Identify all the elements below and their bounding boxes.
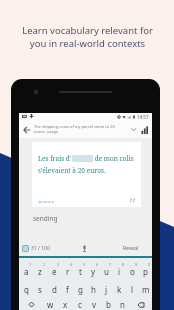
staticText: f <box>66 284 69 295</box>
staticText: b <box>106 299 111 310</box>
button[interactable]: 4 <box>61 261 74 280</box>
staticText: j <box>105 284 108 295</box>
staticText: s <box>38 284 42 295</box>
button[interactable]: g <box>74 280 87 299</box>
button[interactable]: j <box>100 280 113 299</box>
button[interactable]: n <box>115 299 129 310</box>
button[interactable]: f <box>61 280 74 299</box>
button[interactable]: 6 <box>87 261 100 280</box>
staticText: t <box>79 266 82 277</box>
button[interactable]: Shift <box>19 299 43 310</box>
button[interactable]: 7 <box>100 261 113 280</box>
staticText: 3 <box>57 262 60 267</box>
staticText: p <box>143 266 148 277</box>
button[interactable]: Reveal <box>120 243 142 254</box>
staticText: 5 <box>83 262 86 267</box>
button[interactable]: k <box>113 280 126 299</box>
button[interactable]: c <box>73 299 87 310</box>
staticText: k <box>117 284 122 295</box>
staticText: 7 <box>109 262 112 267</box>
button[interactable]: l <box>126 280 139 299</box>
button[interactable]: h <box>87 280 100 299</box>
staticText: 2 <box>43 262 46 267</box>
button[interactable]: w <box>43 299 58 310</box>
button[interactable]: x <box>58 299 73 310</box>
button[interactable]: Back <box>20 123 33 136</box>
button[interactable]: Backspace <box>129 299 152 310</box>
staticText: g <box>78 284 83 295</box>
staticText: o <box>130 266 135 277</box>
button[interactable]: 9 <box>126 261 139 280</box>
staticText: Learn vocabulary relevant for you in rea… <box>22 24 153 50</box>
staticText: 4 <box>70 262 73 267</box>
staticText: c <box>78 299 82 310</box>
button[interactable]: 3 <box>47 261 61 280</box>
button[interactable]: 8 <box>113 261 126 280</box>
staticText: s'élevaient à 20 euros. <box>38 166 106 175</box>
button[interactable]: d <box>47 280 61 299</box>
button[interactable]: Expand <box>129 125 138 134</box>
staticText: z <box>38 266 42 277</box>
staticText: euros. usage <box>34 129 59 134</box>
staticText: y <box>91 266 96 277</box>
staticText: 14:57 <box>137 114 149 120</box>
staticText: 6 <box>96 262 99 267</box>
staticText: n <box>120 299 125 310</box>
staticText: 1 <box>29 262 32 267</box>
staticText: 8 <box>122 262 125 267</box>
staticText: sens.a <box>42 199 54 204</box>
staticText: w <box>47 299 54 310</box>
staticText: Reveal <box>123 245 139 252</box>
button[interactable]: 2 <box>33 261 47 280</box>
staticText: x <box>63 299 68 310</box>
staticText: e <box>52 266 57 277</box>
staticText: u <box>104 266 109 277</box>
staticText: r <box>66 266 70 277</box>
staticText: i <box>118 266 121 277</box>
button[interactable]: Microphone <box>80 244 89 253</box>
staticText: 9 <box>135 262 138 267</box>
button[interactable]: m <box>139 280 152 299</box>
button[interactable]: 0 <box>139 261 152 280</box>
staticText: de mon colis <box>93 154 134 163</box>
button[interactable]: s <box>33 280 47 299</box>
staticText: d <box>52 284 57 295</box>
staticText: 31 / 100 <box>31 245 50 252</box>
staticText: l <box>131 284 134 295</box>
staticText: The shipping costs of my parcel came to … <box>34 124 115 129</box>
staticText: Les frais d' <box>38 154 72 163</box>
staticText: 0 <box>148 262 151 267</box>
staticText: a <box>24 266 29 277</box>
staticText: m <box>142 284 150 295</box>
button[interactable]: Statistics <box>139 124 150 135</box>
staticText: sending <box>33 214 58 223</box>
staticText: h <box>91 284 96 295</box>
button[interactable]: v <box>87 299 101 310</box>
button[interactable]: Les frais d' <box>32 142 141 207</box>
staticText: q <box>24 284 29 295</box>
button[interactable]: 5 <box>74 261 87 280</box>
button[interactable]: 1 <box>19 261 33 280</box>
staticText: v <box>92 299 97 310</box>
button[interactable]: b <box>101 299 115 310</box>
button[interactable]: q <box>19 280 33 299</box>
